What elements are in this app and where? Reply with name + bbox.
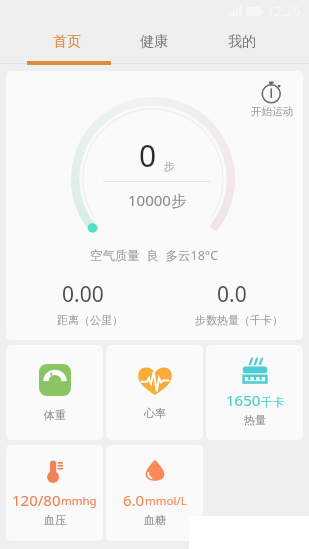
staticText: 10000步 <box>128 190 186 210</box>
button[interactable]: 1650 <box>206 345 303 440</box>
button[interactable]: 我的 <box>198 22 286 64</box>
staticText: 120/80 <box>12 490 61 510</box>
button[interactable]: 6.0 <box>106 445 203 541</box>
staticText: mmhg <box>61 493 97 509</box>
staticText: 体重 <box>44 408 66 422</box>
button[interactable]: 心率 <box>106 345 203 440</box>
button[interactable]: 开始运动 <box>251 78 293 118</box>
staticText: 0.00 <box>62 280 104 309</box>
button[interactable]: 体重 <box>6 345 103 440</box>
staticText: 空气质量 良 多云18°C <box>90 247 219 264</box>
staticText: 健康 <box>140 33 168 51</box>
staticText: 步 <box>164 159 175 173</box>
staticText: 心率 <box>144 406 166 420</box>
staticText: 千卡 <box>261 395 284 409</box>
staticText: mmol/L <box>145 493 187 509</box>
button[interactable]: 120/80 <box>6 445 103 541</box>
staticText: 6.0 <box>123 490 145 510</box>
staticText: 距离（公里） <box>57 313 123 327</box>
staticText: 首页 <box>53 33 81 51</box>
button[interactable]: 健康 <box>110 22 198 64</box>
staticText: 热量 <box>244 413 266 427</box>
staticText: 血压 <box>44 513 66 527</box>
staticText: 0.0 <box>217 280 247 309</box>
staticText: 0 <box>139 135 157 176</box>
button[interactable]: 首页 <box>23 22 110 64</box>
staticText: 我的 <box>228 33 256 51</box>
staticText: 步数热量（千卡） <box>195 313 283 327</box>
staticText: 1650 <box>226 390 261 410</box>
staticText: 血糖 <box>144 513 166 527</box>
staticText: 开始运动 <box>251 105 293 118</box>
